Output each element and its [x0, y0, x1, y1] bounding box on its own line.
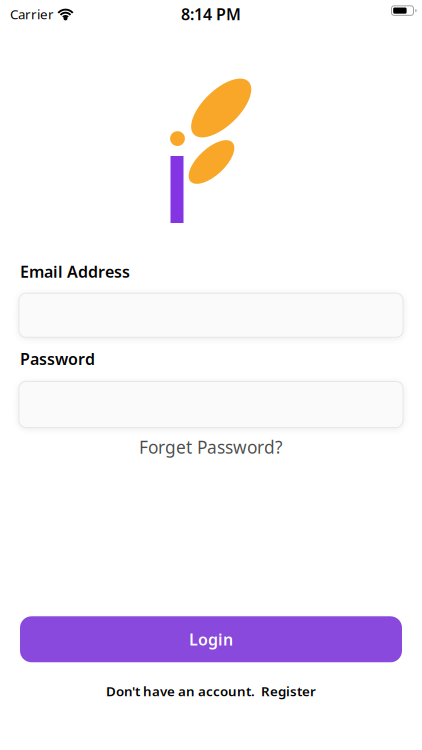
- staticText: Email Address: [20, 261, 130, 282]
- staticText: Forget Password?: [139, 435, 283, 458]
- button[interactable]: Login: [20, 616, 402, 662]
- staticText: 8:14 PM: [181, 3, 241, 25]
- button[interactable]: Register: [261, 682, 316, 700]
- staticText: Register: [261, 682, 316, 700]
- staticText: Don't have an account.: [106, 682, 255, 700]
- staticText: Password: [20, 348, 95, 369]
- button[interactable]: Forget Password?: [139, 435, 283, 458]
- staticText: Login: [189, 629, 233, 650]
- staticText: Carrier: [10, 5, 54, 23]
